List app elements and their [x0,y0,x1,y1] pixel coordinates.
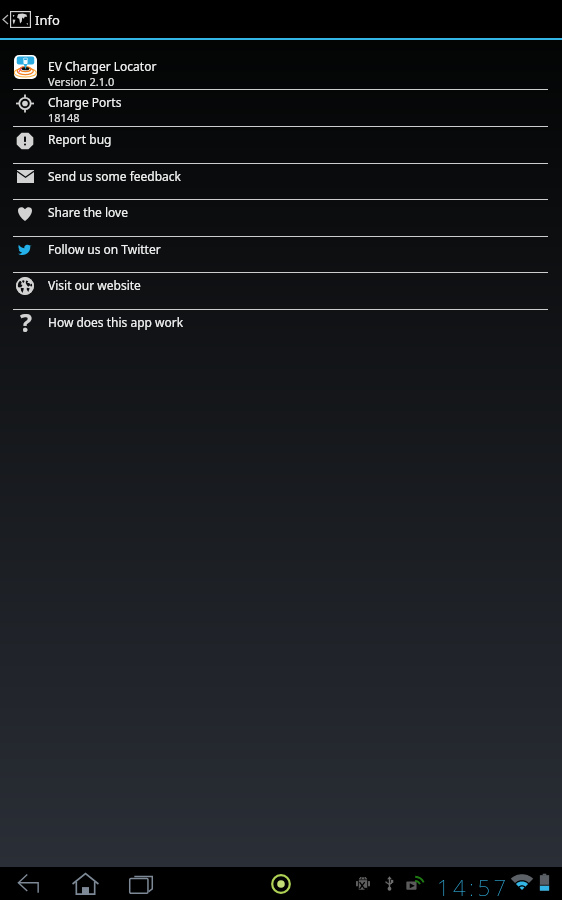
staticText: Version 2.1.0 [48,74,115,89]
button[interactable]: Visit our website [0,273,562,310]
staticText: Follow us on Twitter [48,241,161,257]
button[interactable]: Charge Ports [0,90,562,127]
staticText: Visit our website [48,277,141,293]
staticText: Info [35,11,60,29]
staticText: ? [20,305,32,335]
button[interactable]: Send us some feedback [0,164,562,200]
staticText: How does this app work [48,314,184,330]
button[interactable]: Home [61,867,109,900]
button[interactable]: Share the love [0,200,562,237]
staticText: 14:57 [437,872,510,900]
button[interactable]: Navigate up [0,0,562,38]
button[interactable]: Report bug [0,127,562,164]
staticText: Report bug [48,131,112,147]
staticText: EV Charger Locator [48,58,157,74]
button[interactable]: Back [4,867,52,900]
button[interactable]: Recent apps [117,867,165,900]
staticText: Charge Ports [48,94,122,110]
staticText: Send us some feedback [48,168,181,184]
button[interactable]: EV Charger Locator [0,40,562,90]
button[interactable]: Follow us on Twitter [0,237,562,273]
staticText: 18148 [48,110,80,125]
button[interactable]: ? [0,310,562,346]
staticText: Share the love [48,204,128,220]
